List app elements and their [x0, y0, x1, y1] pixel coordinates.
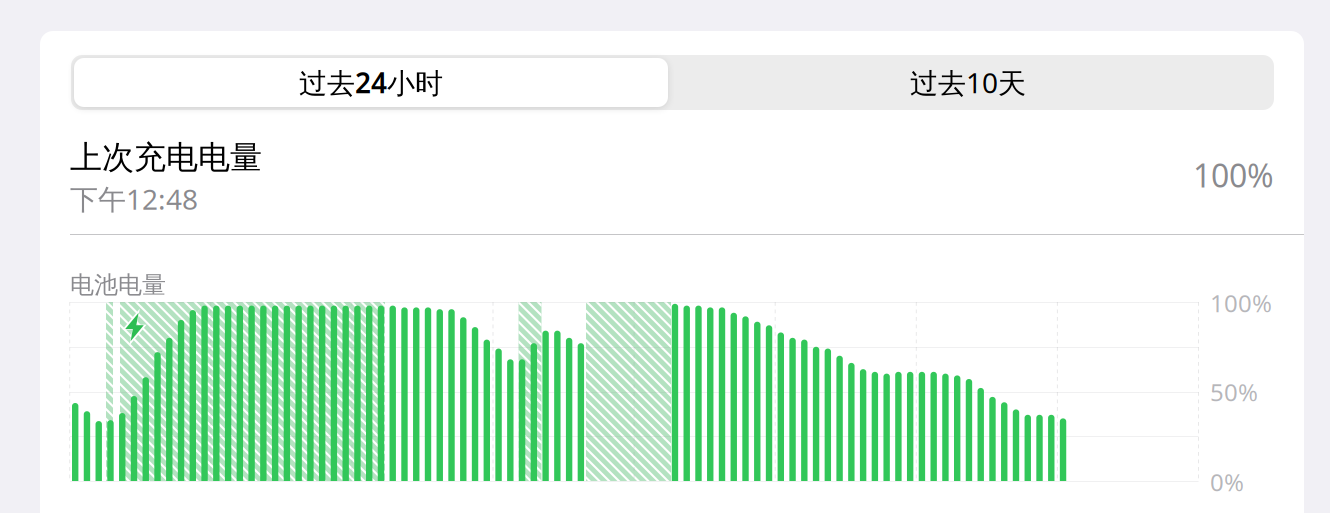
staticText: 下午12:48	[70, 180, 198, 217]
staticText: 电池电量	[70, 270, 166, 300]
button[interactable]: 过去10天	[668, 58, 1268, 107]
staticText: 上次充电电量	[70, 138, 262, 177]
staticText: 过去10天	[910, 64, 1026, 101]
staticText: 0%	[1210, 466, 1244, 498]
staticText: 50%	[1210, 376, 1258, 408]
staticText: 过去24小时	[299, 64, 443, 101]
button[interactable]: 过去24小时	[74, 58, 668, 107]
staticText: 100%	[1193, 154, 1274, 196]
staticText: 100%	[1210, 287, 1272, 319]
